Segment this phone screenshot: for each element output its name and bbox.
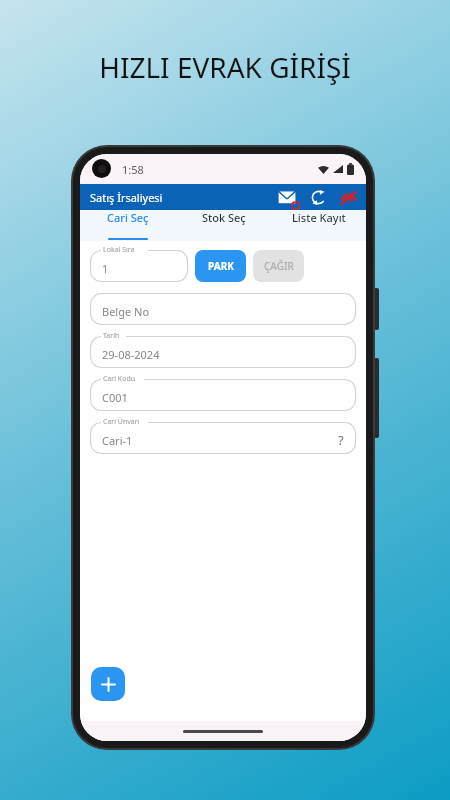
- button[interactable]: Liste Kayıt: [271, 210, 366, 225]
- button[interactable]: Bağlantı yok: [338, 187, 358, 207]
- button[interactable]: Cari Seç: [80, 210, 176, 225]
- button[interactable]: Cari Kodu: [90, 379, 356, 411]
- button[interactable]: PARK: [195, 250, 246, 282]
- staticText: Stok Seç: [202, 210, 246, 225]
- button[interactable]: Cari Ünvan: [90, 422, 356, 454]
- staticText: Satış İrsaliyesi: [90, 190, 163, 205]
- staticText: Cari Kodu: [103, 374, 136, 384]
- staticText: Cari-1: [102, 433, 133, 448]
- button[interactable]: Ekle: [91, 667, 125, 701]
- button[interactable]: Belge No: [90, 293, 356, 325]
- staticText: 1:58: [122, 162, 144, 177]
- button[interactable]: ÇAĞIR: [253, 250, 304, 282]
- staticText: ÇAĞIR: [264, 259, 294, 273]
- staticText: 29-08-2024: [102, 347, 160, 362]
- staticText: PARK: [208, 259, 234, 273]
- staticText: C001: [102, 390, 128, 405]
- staticText: Liste Kayıt: [292, 210, 346, 225]
- button[interactable]: Tarih: [90, 336, 356, 368]
- staticText: ?: [338, 431, 344, 449]
- staticText: 1: [102, 261, 109, 276]
- staticText: Cari Seç: [107, 210, 149, 225]
- button[interactable]: Stok Seç: [176, 210, 271, 225]
- button[interactable]: Lokal Sıra: [90, 250, 188, 282]
- staticText: Lokal Sıra: [103, 245, 135, 255]
- button[interactable]: Yenile: [308, 187, 328, 207]
- staticText: HIZLI EVRAK GİRİŞİ: [99, 48, 351, 86]
- staticText: Tarih: [103, 331, 120, 341]
- staticText: Cari Ünvan: [103, 417, 140, 427]
- button[interactable]: Mesajlar: [276, 186, 298, 208]
- staticText: Belge No: [102, 304, 150, 319]
